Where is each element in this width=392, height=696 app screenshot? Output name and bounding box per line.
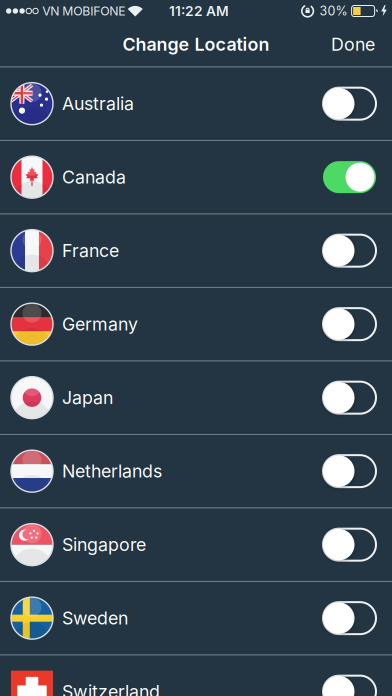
staticText: Netherlands: [62, 460, 162, 482]
staticText: Germany: [62, 313, 138, 335]
button[interactable]: Singapore: [0, 508, 392, 582]
staticText: VN MOBIFONE: [42, 4, 125, 18]
staticText: Sweden: [62, 607, 128, 629]
button[interactable]: Switzerland: [0, 655, 392, 696]
staticText: Singapore: [62, 534, 146, 555]
staticText: Done: [331, 33, 375, 55]
staticText: Canada: [62, 166, 126, 188]
button[interactable]: Japan: [0, 361, 392, 435]
staticText: Australia: [62, 93, 134, 114]
staticText: Change Location: [122, 33, 269, 55]
staticText: 30%: [320, 3, 348, 19]
button[interactable]: Australia: [0, 67, 392, 141]
button[interactable]: Canada: [0, 141, 392, 214]
button[interactable]: Netherlands: [0, 435, 392, 508]
staticText: 11:22 AM: [169, 3, 229, 19]
button[interactable]: Sweden: [0, 582, 392, 655]
staticText: Japan: [62, 387, 113, 408]
staticText: Switzerland: [62, 681, 160, 696]
button[interactable]: France: [0, 214, 392, 288]
button[interactable]: Germany: [0, 288, 392, 361]
staticText: France: [62, 240, 119, 261]
button[interactable]: Done: [331, 33, 375, 55]
